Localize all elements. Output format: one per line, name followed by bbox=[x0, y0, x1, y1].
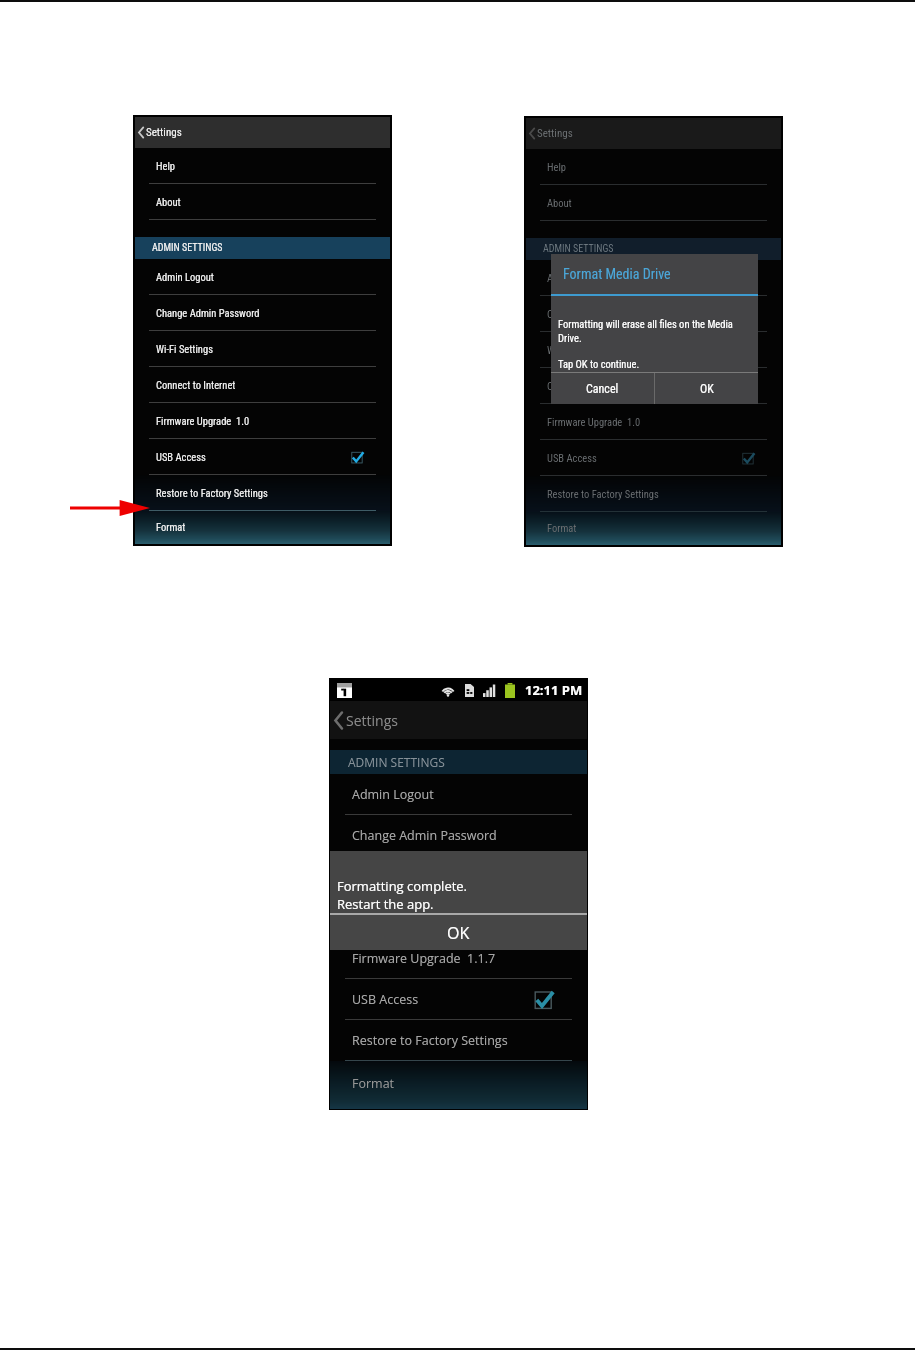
button[interactable]: USB Access bbox=[135, 439, 390, 475]
staticText: Change Admin Password bbox=[352, 827, 497, 844]
staticText: Settings bbox=[146, 126, 182, 139]
staticText: Formatting complete. bbox=[337, 877, 468, 895]
staticText: Connect to Internet bbox=[352, 909, 466, 926]
button[interactable]: Admin Logout bbox=[330, 774, 587, 815]
button[interactable]: Connect to Internet bbox=[526, 368, 781, 404]
button[interactable]: Restore to Factory Settings bbox=[526, 476, 781, 512]
button[interactable]: Back to Settings bbox=[526, 118, 781, 149]
staticText: Help bbox=[547, 161, 567, 173]
button[interactable]: Format bbox=[135, 511, 390, 544]
staticText: Formatting will erase all files on the M… bbox=[558, 318, 756, 345]
button[interactable]: Cancel bbox=[551, 373, 654, 404]
button[interactable]: Help bbox=[135, 148, 390, 184]
staticText: Admin Logout bbox=[156, 271, 214, 283]
staticText: Settings bbox=[537, 127, 573, 140]
staticText: Format Media Drive bbox=[563, 266, 671, 282]
staticText: ADMIN SETTINGS bbox=[348, 754, 445, 770]
button[interactable]: Firmware Upgrade 1.1.7 bbox=[330, 938, 587, 979]
staticText: Connect to Internet bbox=[156, 379, 236, 391]
staticText: USB Access bbox=[156, 451, 206, 463]
staticText: Restore to Factory Settings bbox=[352, 1032, 508, 1049]
staticText: Connect to Internet bbox=[547, 380, 627, 392]
staticText: ADMIN SETTINGS bbox=[543, 243, 614, 255]
staticText: Format bbox=[547, 522, 577, 534]
staticText: Restore to Factory Settings bbox=[156, 487, 268, 499]
button[interactable]: Admin Logout bbox=[135, 259, 390, 295]
staticText: Wi-Fi Settings bbox=[352, 868, 430, 885]
staticText: Format bbox=[352, 1075, 395, 1092]
button[interactable]: Change Admin Password bbox=[330, 815, 587, 856]
staticText: ADMIN SETTINGS bbox=[152, 242, 223, 254]
button[interactable]: About bbox=[526, 185, 781, 221]
staticText: Wi-Fi Settings bbox=[156, 343, 213, 355]
button[interactable]: Wi-Fi Settings bbox=[330, 856, 587, 897]
button[interactable]: USB Access bbox=[330, 979, 587, 1020]
button[interactable]: Connect to Internet bbox=[330, 897, 587, 938]
button[interactable]: Back to Settings bbox=[330, 701, 587, 739]
staticText: Tap OK to continue. bbox=[558, 358, 640, 370]
button[interactable]: Back to Settings bbox=[135, 117, 390, 148]
staticText: About bbox=[547, 197, 572, 209]
staticText: Firmware Upgrade 1.0 bbox=[547, 416, 641, 428]
staticText: Restart the app. bbox=[337, 895, 434, 913]
button[interactable]: USB Access bbox=[526, 440, 781, 476]
staticText: USB Access bbox=[547, 452, 597, 464]
button[interactable]: Admin Logout bbox=[526, 260, 781, 296]
staticText: Change Admin Password bbox=[156, 307, 260, 319]
staticText: Admin Logout bbox=[352, 786, 434, 803]
staticText: 12:11 PM bbox=[525, 681, 583, 699]
button[interactable]: About bbox=[135, 184, 390, 220]
staticText: Firmware Upgrade 1.0 bbox=[156, 415, 250, 427]
button[interactable]: Wi-Fi Settings bbox=[135, 331, 390, 367]
button[interactable]: Restore to Factory Settings bbox=[135, 475, 390, 511]
button[interactable]: Format bbox=[526, 512, 781, 545]
staticText: Admin Logout bbox=[547, 272, 605, 284]
button[interactable]: Firmware Upgrade 1.0 bbox=[526, 404, 781, 440]
staticText: Wi-Fi Settings bbox=[547, 344, 604, 356]
button[interactable]: Change Admin Password bbox=[135, 295, 390, 331]
button[interactable]: OK bbox=[330, 915, 587, 950]
staticText: Help bbox=[156, 160, 176, 172]
staticText: USB Access bbox=[352, 991, 419, 1008]
button[interactable]: Help bbox=[526, 149, 781, 185]
button[interactable]: Format bbox=[330, 1061, 587, 1109]
button[interactable]: Restore to Factory Settings bbox=[330, 1020, 587, 1061]
staticText: Firmware Upgrade 1.1.7 bbox=[352, 950, 496, 967]
staticText: Cancel bbox=[586, 382, 619, 396]
button[interactable]: Wi-Fi Settings bbox=[526, 332, 781, 368]
button[interactable]: OK bbox=[655, 373, 758, 404]
staticText: Format bbox=[156, 521, 186, 533]
staticText: OK bbox=[700, 382, 714, 396]
button[interactable]: Firmware Upgrade 1.0 bbox=[135, 403, 390, 439]
staticText: OK bbox=[447, 922, 470, 944]
button[interactable]: Connect to Internet bbox=[135, 367, 390, 403]
staticText: Restore to Factory Settings bbox=[547, 488, 659, 500]
button[interactable]: Change Admin Password bbox=[526, 296, 781, 332]
staticText: Settings bbox=[346, 711, 398, 730]
staticText: Change Admin Password bbox=[547, 308, 651, 320]
staticText: About bbox=[156, 196, 181, 208]
